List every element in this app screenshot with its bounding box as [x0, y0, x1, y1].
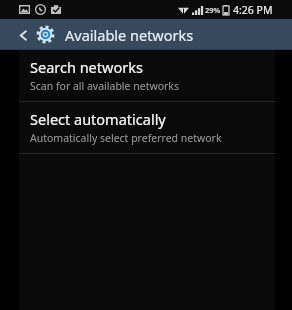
button[interactable]: Search networks — [19, 50, 275, 101]
button[interactable]: Back — [14, 26, 32, 44]
staticText: 29% — [205, 5, 221, 15]
staticText: Select automatically — [30, 109, 166, 129]
staticText: Available networks — [65, 25, 194, 45]
staticText: Scan for all available networks — [30, 79, 180, 93]
button[interactable]: Back — [0, 19, 292, 50]
button[interactable]: Select automatically — [19, 102, 275, 153]
staticText: 4:26 PM — [233, 3, 273, 17]
staticText: Search networks — [30, 57, 143, 77]
staticText: Automatically select preferred network — [30, 131, 222, 145]
